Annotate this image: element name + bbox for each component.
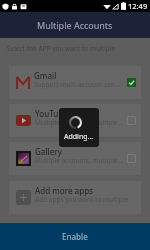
- staticText: Support multi-account simult...: [34, 80, 124, 89]
- staticText: Enable: [62, 231, 88, 242]
- staticText: Select the APP you want to multiple: [7, 44, 116, 53]
- staticText: Adding...: [64, 132, 94, 142]
- button[interactable]: Add more apps: [9, 181, 141, 214]
- staticText: Add more apps: [35, 185, 93, 196]
- staticText: Multiple Accounts: [37, 19, 113, 31]
- staticText: Gmail: [34, 70, 57, 81]
- button[interactable]: YouTube: [9, 104, 141, 137]
- staticText: Add apps you want to multiple: [35, 195, 129, 204]
- button[interactable]: Gallery: [9, 142, 141, 175]
- button[interactable]: Gmail: [9, 66, 141, 99]
- button[interactable]: Not selected: [127, 154, 136, 163]
- button[interactable]: Enable: [0, 223, 150, 250]
- staticText: YouTube: [35, 108, 68, 119]
- staticText: Gallery: [35, 146, 62, 157]
- staticText: Multiple accounts, multiple fu...: [35, 118, 124, 127]
- button[interactable]: Selected: [127, 78, 136, 87]
- staticText: 12:49: [128, 1, 148, 11]
- button[interactable]: Not selected: [127, 116, 136, 125]
- staticText: Multiple accounts, multiple fu...: [35, 156, 124, 165]
